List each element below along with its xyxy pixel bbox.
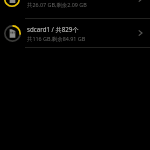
staticText: 共26.07 GB,剩余2.09 GB xyxy=(27,1,87,8)
button[interactable]: 手机存储 / 共70个 xyxy=(0,0,150,18)
staticText: sdcard1 / 共829个 xyxy=(27,25,79,33)
staticText: 共116 GB,剩余84.91 GB xyxy=(27,35,86,42)
button[interactable]: sdcard1 / 共829个 xyxy=(0,19,150,47)
other: Open xyxy=(134,0,146,5)
other: Open xyxy=(134,27,146,39)
